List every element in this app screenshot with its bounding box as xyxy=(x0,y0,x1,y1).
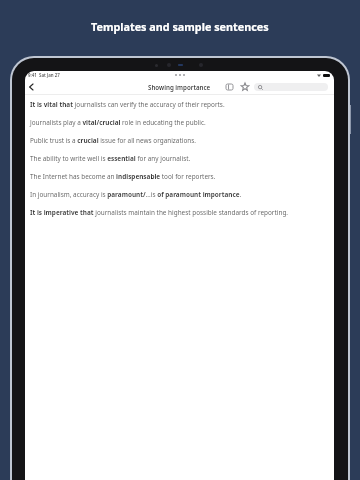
staticText: It is imperative that journalists mainta… xyxy=(30,208,289,217)
button[interactable]: Public trust is a crucial issue for all … xyxy=(30,131,330,149)
button[interactable]: Back xyxy=(25,81,37,93)
button[interactable]: It is imperative that journalists mainta… xyxy=(30,203,330,221)
staticText: Showing importance xyxy=(148,83,211,91)
staticText: In journalism, accuracy is paramount/...… xyxy=(30,190,242,199)
button[interactable]: The ability to write well is essential f… xyxy=(30,149,330,167)
staticText: Templates and sample sentences xyxy=(91,19,269,34)
button[interactable]: It is vital that journalists can verify … xyxy=(30,95,330,113)
staticText: The ability to write well is essential f… xyxy=(30,154,191,163)
staticText: Public trust is a crucial issue for all … xyxy=(30,136,196,145)
button[interactable]: Toggle panel xyxy=(223,81,235,93)
button[interactable]: Search xyxy=(254,83,328,91)
button[interactable]: Favorite xyxy=(239,81,251,93)
staticText: The Internet has become an indispensable… xyxy=(30,172,216,181)
staticText: 9:41 Sat Jan 27 xyxy=(28,72,60,78)
button[interactable]: The Internet has become an indispensable… xyxy=(30,167,330,185)
button[interactable]: In journalism, accuracy is paramount/...… xyxy=(30,185,330,203)
staticText: It is vital that journalists can verify … xyxy=(30,100,225,109)
staticText: Journalists play a vital/crucial role in… xyxy=(30,118,206,127)
button[interactable]: Journalists play a vital/crucial role in… xyxy=(30,113,330,131)
